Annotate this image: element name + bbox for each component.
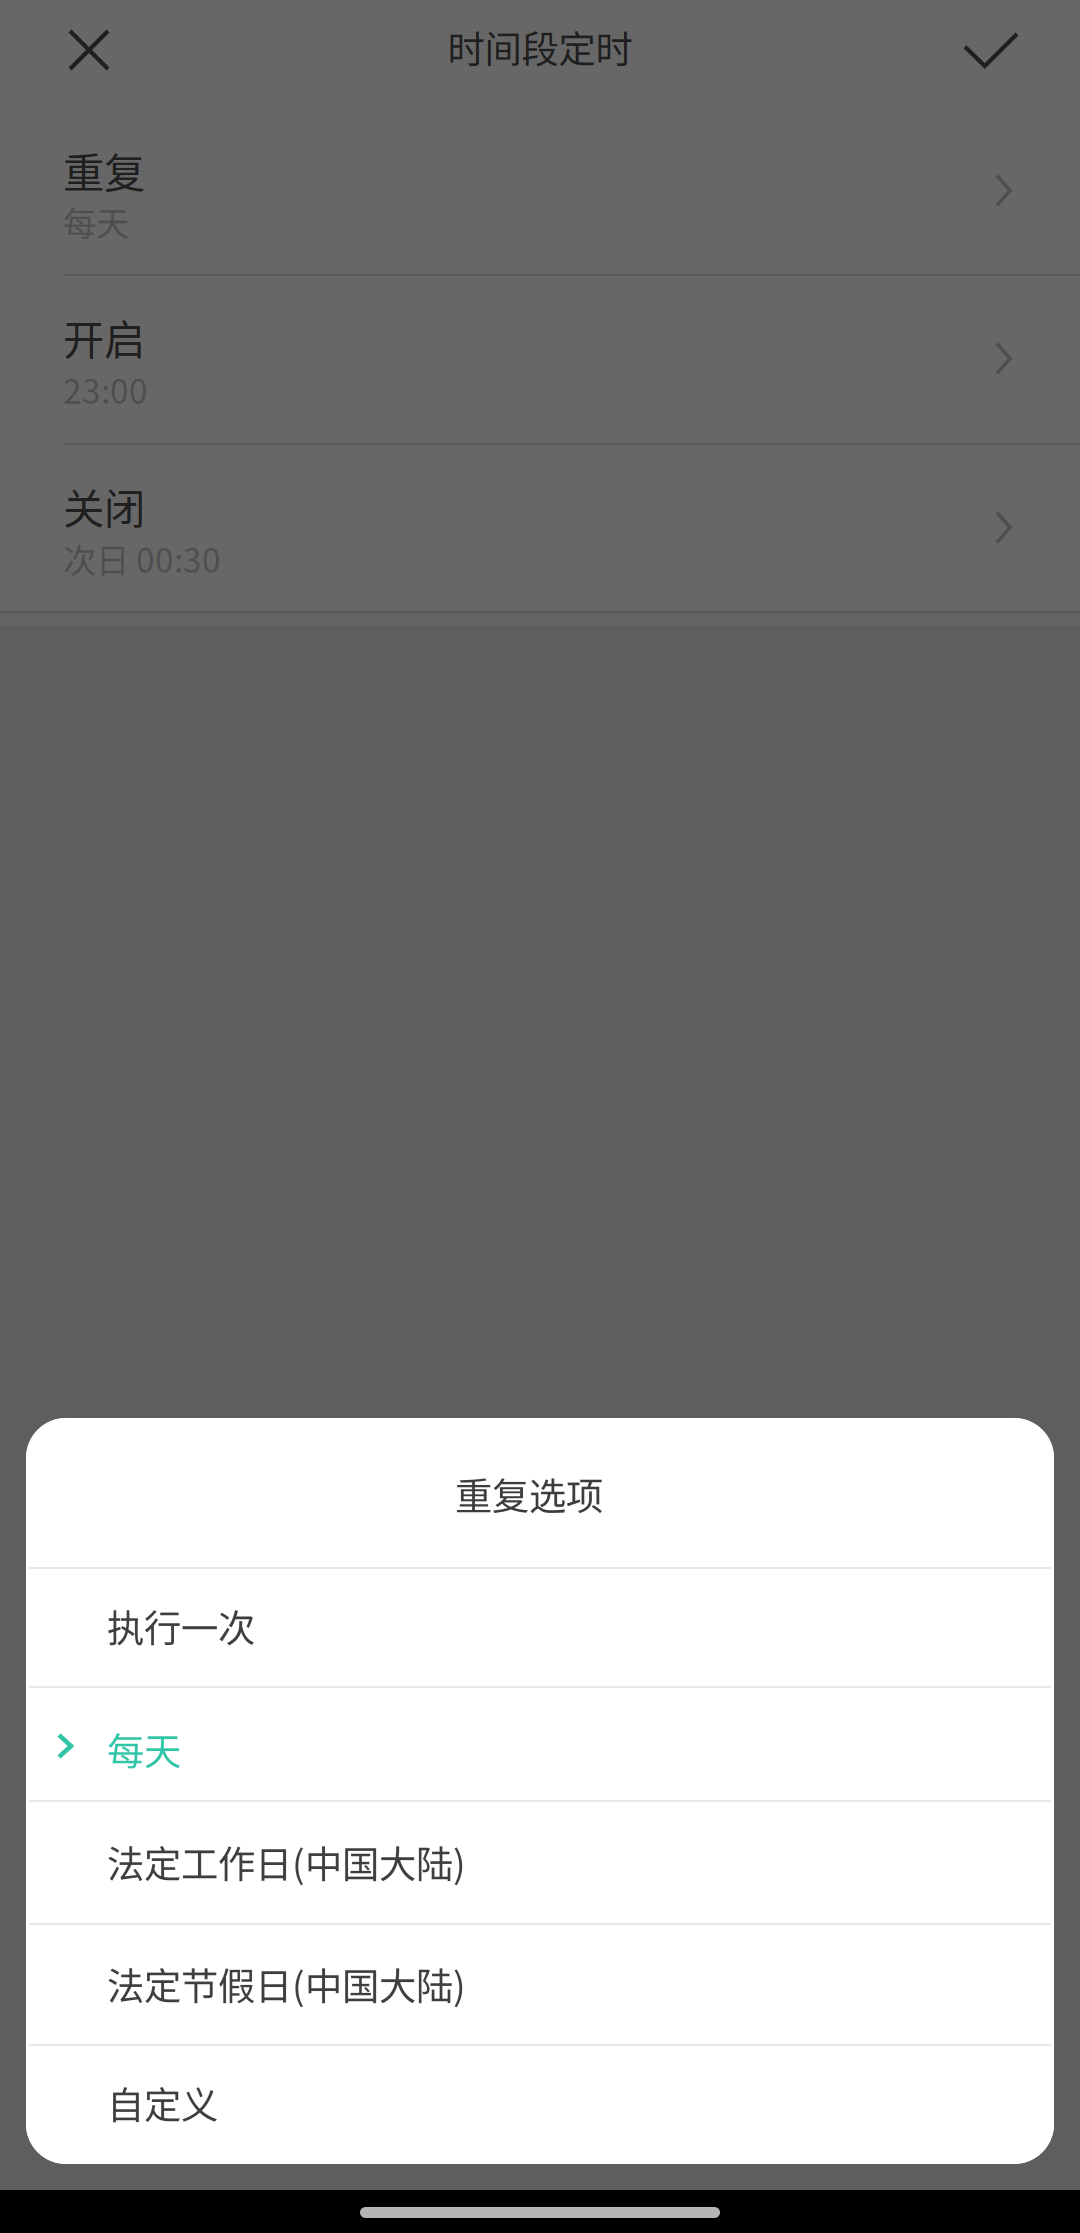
button[interactable]: 关闭 — [0, 445, 1080, 611]
staticText: 法定工作日(中国大陆) — [107, 1835, 466, 1889]
button[interactable]: 自定义 — [26, 2046, 1054, 2164]
staticText: 自定义 — [107, 2076, 218, 2130]
button[interactable]: 执行一次 — [26, 1569, 1054, 1686]
button[interactable]: Confirm — [902, 0, 1080, 100]
staticText: 开启 — [63, 307, 145, 367]
button[interactable]: 重复 — [0, 100, 1080, 274]
button[interactable]: 开启 — [0, 276, 1080, 443]
staticText: 次日 00:30 — [63, 534, 221, 582]
button[interactable]: 法定工作日(中国大陆) — [26, 1802, 1054, 1923]
button[interactable]: Close — [0, 0, 178, 100]
staticText: 法定节假日(中国大陆) — [107, 1957, 466, 2011]
button[interactable]: 每天 — [26, 1688, 1054, 1800]
staticText: 重复 — [63, 140, 145, 200]
staticText: 每天 — [63, 197, 129, 245]
staticText: 执行一次 — [107, 1599, 255, 1653]
staticText: 每天 — [107, 1722, 181, 1776]
staticText: 重复选项 — [455, 1467, 603, 1521]
staticText: 23:00 — [63, 365, 148, 413]
button[interactable]: 法定节假日(中国大陆) — [26, 1925, 1054, 2044]
staticText: 关闭 — [63, 476, 145, 536]
staticText: 时间段定时 — [447, 20, 632, 74]
